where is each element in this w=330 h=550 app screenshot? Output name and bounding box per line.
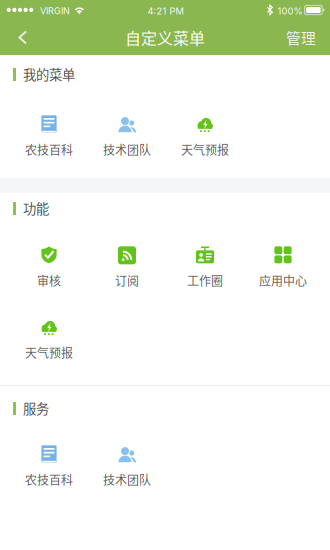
staticText: 应用中心	[259, 272, 307, 289]
staticText: 农技百科	[25, 141, 73, 158]
staticText: 订阅	[115, 272, 139, 289]
staticText: 服务	[23, 398, 49, 418]
staticText: 审核	[37, 272, 61, 289]
staticText: 功能	[23, 198, 49, 218]
staticText: 天气预报	[25, 344, 73, 361]
button[interactable]: 天气预报	[166, 114, 244, 158]
button[interactable]: Back	[0, 20, 39, 55]
staticText: 4:21 PM	[147, 5, 183, 17]
button[interactable]: 农技百科	[10, 444, 88, 488]
staticText: 农技百科	[25, 471, 73, 488]
staticText: 天气预报	[181, 141, 229, 158]
staticText: 100%	[277, 5, 302, 17]
button[interactable]: 审核	[10, 245, 88, 289]
staticText: VIRGIN	[40, 5, 70, 16]
button[interactable]: 应用中心	[244, 245, 322, 289]
button[interactable]: 技术团队	[88, 444, 166, 488]
button[interactable]: 天气预报	[10, 317, 88, 361]
button[interactable]: 订阅	[88, 245, 166, 289]
button[interactable]: 技术团队	[88, 114, 166, 158]
staticText: 技术团队	[103, 471, 151, 488]
staticText: 管理	[286, 27, 316, 48]
button[interactable]: 工作圈	[166, 245, 244, 289]
staticText: 技术团队	[103, 141, 151, 158]
staticText: 自定义菜单	[125, 26, 205, 49]
button[interactable]: 农技百科	[10, 114, 88, 158]
staticText: 工作圈	[187, 272, 223, 289]
staticText: 我的菜单	[23, 64, 75, 84]
button[interactable]: 管理	[274, 17, 330, 58]
